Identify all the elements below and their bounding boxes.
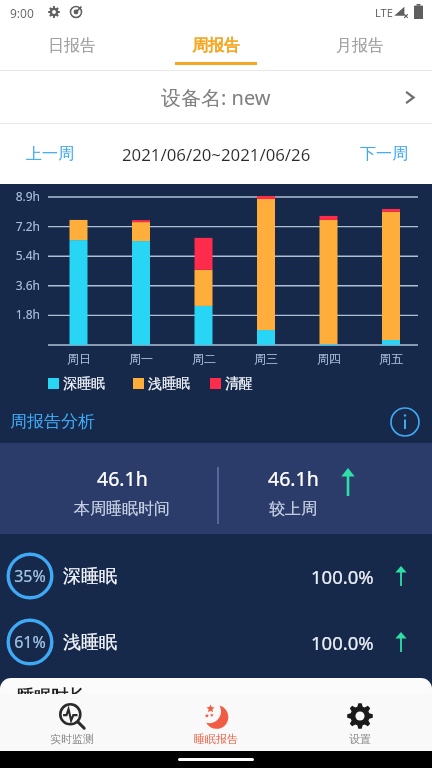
staticText: 月报告 — [336, 36, 384, 56]
button[interactable]: 61% — [0, 609, 432, 675]
staticText: LTE — [375, 5, 393, 20]
button[interactable]: 上一周 — [26, 144, 74, 164]
staticText: 周报告分析 — [10, 411, 95, 432]
staticText: 1.8h — [0, 306, 40, 322]
staticText: 周四 — [309, 351, 349, 366]
staticText: 深睡眠 — [63, 565, 117, 588]
staticText: 浅睡眠 — [63, 631, 117, 654]
staticText: 设置 — [288, 732, 432, 746]
button[interactable]: 35% — [0, 543, 432, 609]
staticText: 深睡眠 — [63, 375, 105, 393]
button[interactable]: 设备名: new — [0, 71, 432, 124]
button[interactable]: Settings — [288, 694, 432, 751]
staticText: 本周睡眠时间 — [74, 499, 170, 519]
staticText: 上一周 — [26, 144, 74, 164]
staticText: 周一 — [121, 351, 161, 366]
staticText: 3.6h — [0, 277, 40, 293]
staticText: 100.0% — [311, 564, 374, 589]
button[interactable]: Info — [389, 406, 421, 438]
staticText: 46.1h — [97, 465, 148, 492]
staticText: 周日 — [59, 351, 99, 366]
button[interactable]: Sleep report — [144, 694, 288, 751]
button[interactable]: 周报告 — [144, 24, 288, 71]
staticText: 46.1h — [268, 465, 319, 492]
staticText: 周报告 — [192, 36, 240, 56]
staticText: 睡眠报告 — [144, 732, 288, 746]
staticText: 100.0% — [311, 630, 374, 655]
staticText: 61% — [6, 631, 54, 653]
staticText: 设备名: new — [161, 84, 271, 111]
staticText: 下一周 — [360, 144, 408, 164]
button[interactable]: 日报告 — [0, 24, 144, 71]
staticText: 实时监测 — [0, 732, 144, 746]
staticText: 浅睡眠 — [148, 375, 190, 393]
staticText: 清醒 — [225, 375, 253, 393]
button[interactable]: Real-time monitoring — [0, 694, 144, 751]
staticText: 睡眠时长 — [17, 686, 85, 694]
staticText: 日报告 — [48, 36, 96, 56]
staticText: 35% — [6, 565, 54, 587]
staticText: 5.4h — [0, 247, 40, 263]
staticText: 周三 — [246, 351, 286, 366]
staticText: 较上周 — [269, 499, 317, 519]
staticText: 2021/06/20~2021/06/26 — [122, 143, 311, 166]
staticText: 周五 — [371, 351, 411, 366]
button[interactable]: 月报告 — [288, 24, 432, 71]
staticText: 7.2h — [0, 218, 40, 234]
staticText: 9:00 — [10, 5, 34, 21]
staticText: 周二 — [184, 351, 224, 366]
staticText: 8.9h — [0, 188, 40, 204]
button[interactable]: 下一周 — [360, 144, 408, 164]
